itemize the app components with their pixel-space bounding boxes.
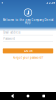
staticText: LOG IN	[23, 49, 32, 53]
button[interactable]: Home	[25, 93, 31, 99]
button[interactable]: Email address	[0, 30, 56, 36]
staticText: Password	[3, 37, 15, 40]
button[interactable]: LOG IN	[3, 48, 53, 53]
staticText: Forgot your password?	[13, 56, 43, 59]
staticText: App	[25, 21, 31, 24]
button[interactable]: Recent apps	[40, 93, 47, 99]
button[interactable]: Password	[0, 36, 56, 42]
staticText: Welcome to the new Company Dental	[2, 18, 53, 22]
staticText: Email address	[3, 31, 20, 34]
button[interactable]: Back	[9, 92, 16, 100]
button[interactable]: Forgot your password?	[13, 56, 43, 59]
